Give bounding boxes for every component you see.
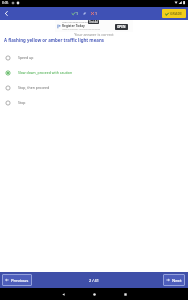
button[interactable]: Back (0, 7, 13, 20)
button[interactable]: Home (79, 288, 110, 300)
staticText: GRADE (170, 11, 183, 16)
button[interactable]: Back (48, 288, 79, 300)
button[interactable]: Stop (0, 95, 188, 110)
staticText: 2 / 41 (89, 278, 99, 283)
staticText: Stop (18, 100, 26, 105)
button[interactable]: Recents (110, 288, 141, 300)
staticText: OPEN (117, 25, 126, 29)
button[interactable]: Speed up (0, 50, 188, 65)
staticText: Previous (11, 277, 29, 283)
button[interactable]: Next (163, 274, 185, 286)
staticText: Your answer is correct (0, 32, 188, 37)
button[interactable]: GRADE (162, 9, 186, 18)
button[interactable]: Slow down, proceed with caution (0, 65, 188, 80)
staticText: Stop, then proceed (18, 85, 50, 90)
staticText: Apply in minutes · dmv-practice.example (62, 28, 101, 31)
button[interactable]: OPEN (115, 24, 128, 30)
staticText: A flashing yellow or amber traffic light… (4, 37, 104, 43)
staticText: Test Ad (89, 20, 98, 24)
staticText: Speed up (18, 55, 34, 60)
staticText: 8:05 (2, 1, 9, 5)
staticText: Slow down, proceed with caution (18, 70, 73, 75)
button[interactable]: Stop, then proceed (0, 80, 188, 95)
staticText: 1 (76, 11, 79, 16)
staticText: 1 (95, 11, 98, 16)
staticText: Next (172, 277, 182, 283)
button[interactable]: Learn the Rules of the Road (55, 20, 133, 32)
button[interactable]: Previous (2, 274, 32, 286)
staticText: Register Today (62, 24, 85, 28)
staticText: Learn the Rules of the Road (62, 21, 91, 24)
